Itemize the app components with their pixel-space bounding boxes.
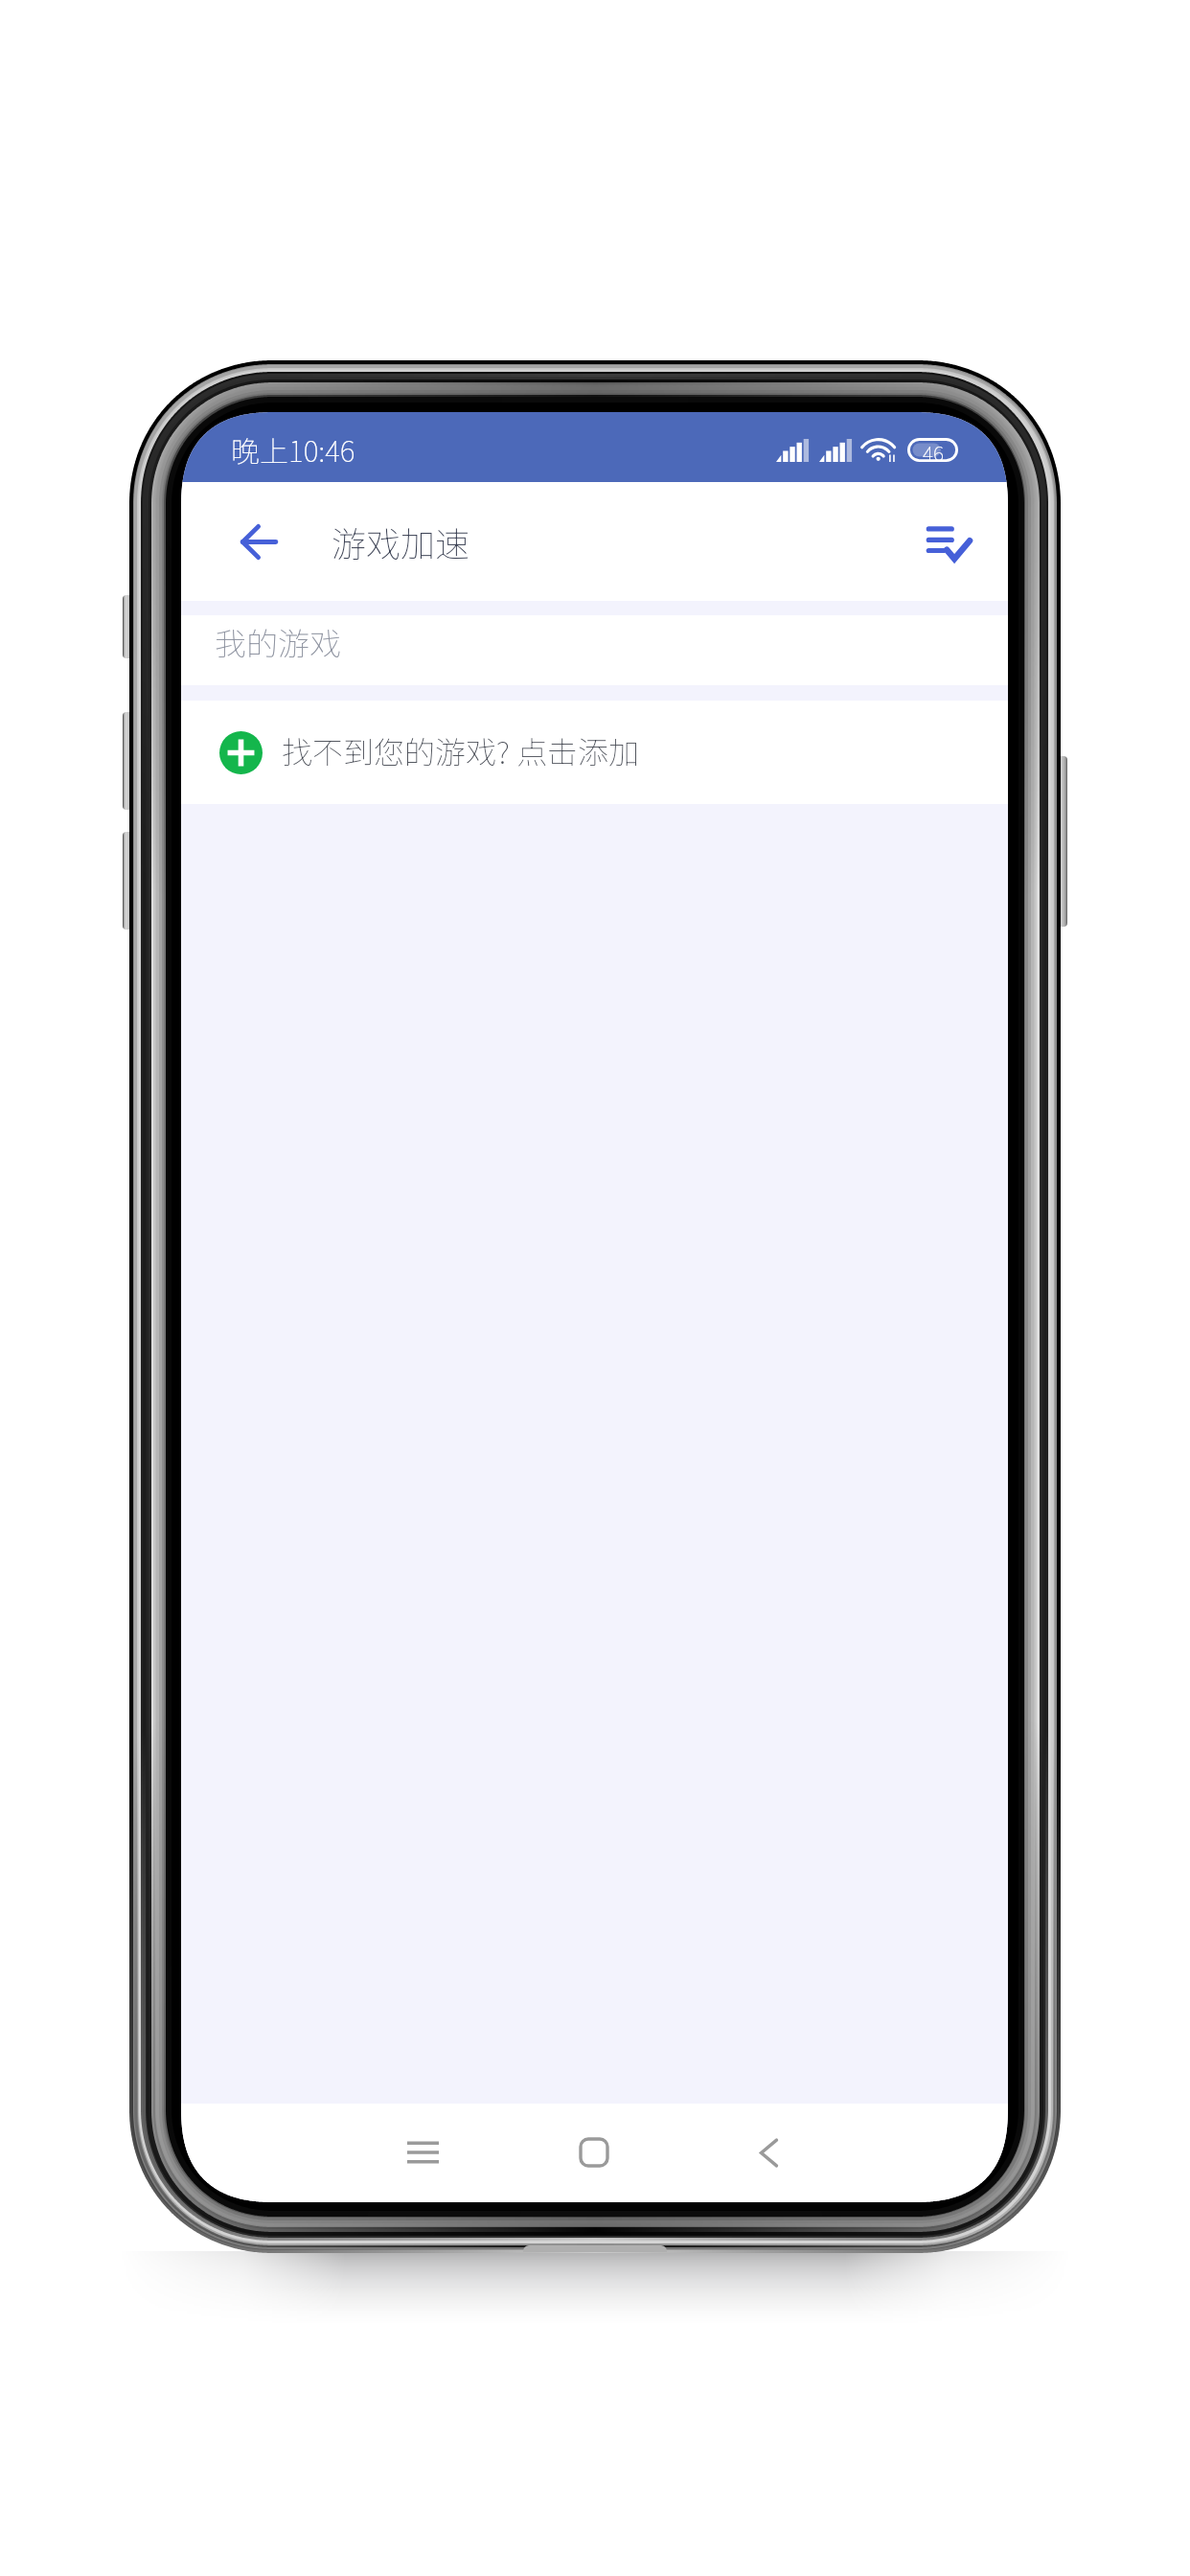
button[interactable]: 找不到您的游戏? 点击添加: [181, 701, 1008, 804]
staticText: 找不到您的游戏? 点击添加: [282, 728, 639, 772]
button[interactable]: Home: [551, 2109, 637, 2196]
staticText: 晚上10:46: [231, 428, 355, 470]
staticText: 我的游戏: [215, 619, 341, 665]
button[interactable]: Select all games: [911, 505, 984, 578]
staticText: 46: [923, 438, 944, 462]
staticText: 游戏加速: [332, 517, 470, 566]
button[interactable]: Recent apps: [379, 2109, 466, 2196]
button[interactable]: Back: [222, 505, 295, 578]
button[interactable]: Back: [725, 2109, 812, 2196]
